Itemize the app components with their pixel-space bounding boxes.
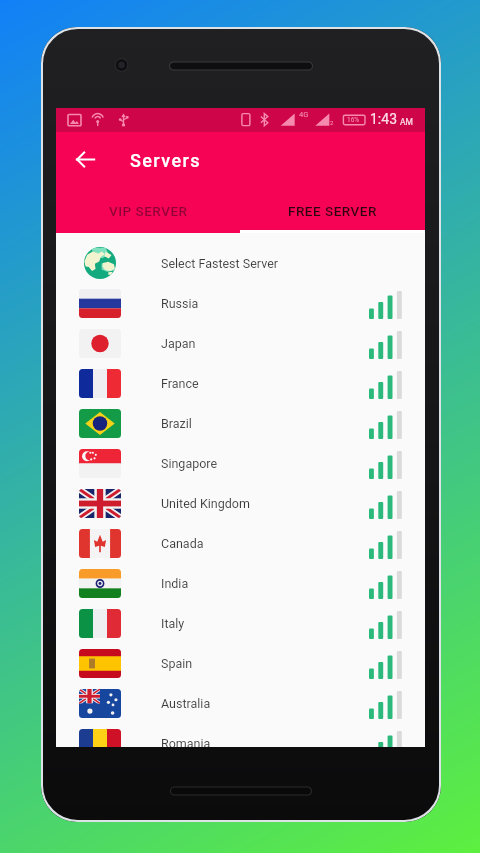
staticText: Russia bbox=[161, 296, 199, 311]
staticText: Brazil bbox=[161, 416, 192, 431]
button[interactable]: Select Fastest Server bbox=[56, 243, 425, 283]
staticText: Spain bbox=[161, 656, 193, 671]
button[interactable]: Canada bbox=[56, 523, 425, 563]
button[interactable]: Romania bbox=[56, 723, 425, 747]
staticText: Australia bbox=[161, 696, 211, 711]
button[interactable]: VIP SERVER bbox=[56, 185, 240, 233]
button[interactable]: Italy bbox=[56, 603, 425, 643]
button[interactable]: Singapore bbox=[56, 443, 425, 483]
button[interactable]: Brazil bbox=[56, 403, 425, 443]
button[interactable]: France bbox=[56, 363, 425, 403]
staticText: 16% bbox=[347, 116, 360, 124]
staticText: 4G bbox=[299, 110, 309, 119]
button[interactable]: FREE SERVER bbox=[240, 185, 425, 233]
button[interactable]: Japan bbox=[56, 323, 425, 363]
staticText: Singapore bbox=[161, 456, 218, 471]
staticText: VIP SERVER bbox=[109, 203, 188, 219]
button[interactable]: Back bbox=[65, 139, 105, 179]
staticText: France bbox=[161, 376, 199, 391]
staticText: 1:43 bbox=[370, 111, 397, 127]
staticText: AM bbox=[400, 117, 413, 127]
staticText: Select Fastest Server bbox=[161, 256, 278, 271]
staticText: 2 bbox=[330, 119, 334, 126]
button[interactable]: Russia bbox=[56, 283, 425, 323]
button[interactable]: Spain bbox=[56, 643, 425, 683]
staticText: Italy bbox=[161, 616, 185, 631]
staticText: Canada bbox=[161, 536, 204, 551]
staticText: United Kingdom bbox=[161, 496, 250, 511]
staticText: Japan bbox=[161, 336, 196, 351]
staticText: India bbox=[161, 576, 189, 591]
button[interactable]: United Kingdom bbox=[56, 483, 425, 523]
staticText: FREE SERVER bbox=[288, 203, 377, 219]
staticText: Servers bbox=[130, 150, 201, 171]
staticText: Romania bbox=[161, 736, 211, 747]
button[interactable]: Australia bbox=[56, 683, 425, 723]
button[interactable]: India bbox=[56, 563, 425, 603]
